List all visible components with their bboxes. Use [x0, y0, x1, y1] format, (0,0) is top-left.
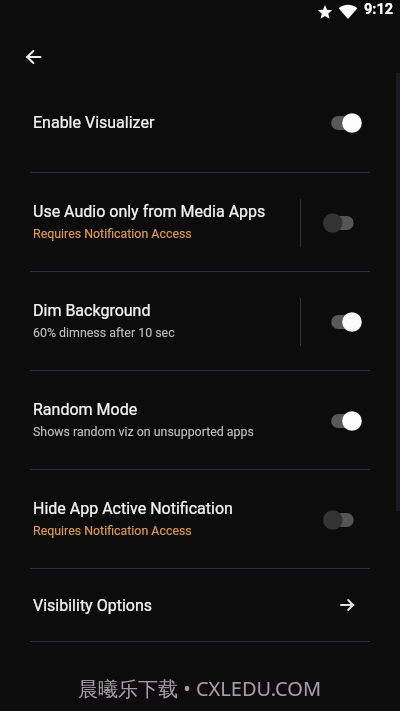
- staticText: Requires Notification Access: [33, 226, 192, 241]
- button[interactable]: Use Audio only from Media Apps: [0, 173, 400, 272]
- staticText: Shows random viz on unsupported apps: [33, 424, 254, 439]
- staticText: 9:12: [364, 1, 394, 18]
- button[interactable]: Hide App Active Notification: [0, 470, 400, 569]
- button[interactable]: Random Mode: [0, 371, 400, 470]
- button[interactable]: Back: [13, 37, 53, 77]
- staticText: Use Audio only from Media Apps: [33, 202, 266, 221]
- button[interactable]: Enable Visualizer: [0, 73, 400, 173]
- staticText: Random Mode: [33, 400, 138, 419]
- staticText: Dim Background: [33, 301, 151, 320]
- staticText: 晨曦乐下载 • CXLEDU.COM: [78, 675, 322, 702]
- staticText: Enable Visualizer: [33, 113, 155, 132]
- staticText: Visibility Options: [33, 596, 341, 615]
- staticText: 60% dimness after 10 sec: [33, 325, 175, 340]
- staticText: Hide App Active Notification: [33, 499, 233, 518]
- button[interactable]: Visibility Options: [0, 569, 400, 642]
- button[interactable]: Dim Background: [0, 272, 400, 371]
- staticText: Requires Notification Access: [33, 523, 192, 538]
